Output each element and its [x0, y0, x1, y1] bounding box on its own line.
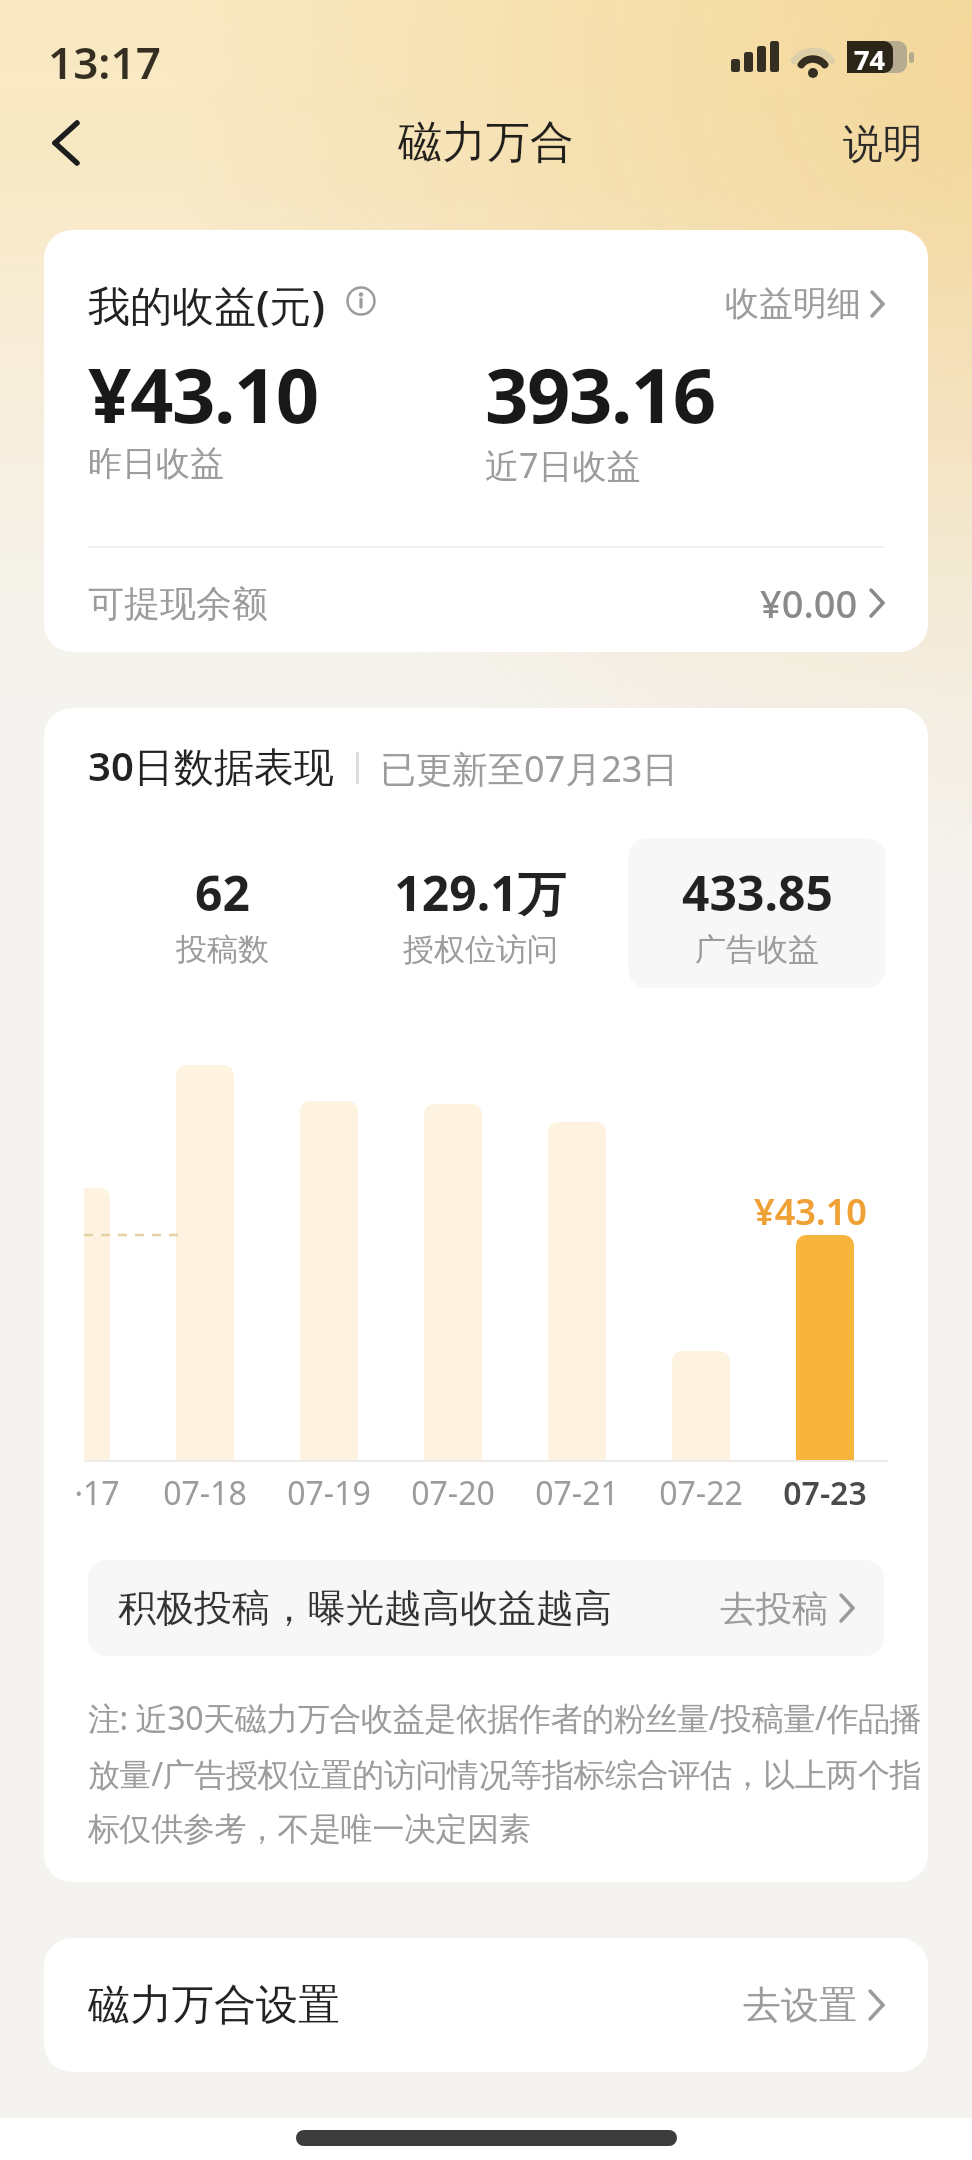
staticText: 磁力万合: [398, 115, 574, 170]
button[interactable]: 磁力万合设置: [88, 1938, 884, 2072]
staticText: ¥0.00: [760, 577, 858, 629]
staticText: 已更新至07月23日: [380, 744, 679, 793]
button[interactable]: 说明: [843, 118, 923, 168]
staticText: 07-23: [783, 1471, 867, 1515]
button[interactable]: 可提现余额: [88, 570, 884, 636]
staticText: 磁力万合设置: [88, 1979, 340, 2032]
staticText: 投稿数: [176, 930, 269, 969]
staticText: 129.1万: [394, 860, 566, 926]
staticText: 收益明细: [725, 282, 861, 325]
staticText: 去投稿: [720, 1586, 828, 1631]
staticText: ¥43.10: [88, 342, 318, 446]
staticText: 注: 近30天磁力万合收益是依据作者的粉丝量/投稿量/作品播 放量/广告授权位置…: [88, 1696, 928, 1850]
staticText: 30日数据表现: [88, 738, 334, 793]
staticText: ·17: [74, 1471, 120, 1515]
staticText: 积极投稿，曝光越高收益越高: [118, 1584, 612, 1632]
staticText: 可提现余额: [88, 581, 268, 626]
button[interactable]: [52, 120, 80, 166]
staticText: 去设置: [743, 1981, 857, 2029]
staticText: ¥43.10: [754, 1187, 867, 1236]
button[interactable]: 收益明细: [725, 282, 884, 325]
staticText: 授权位访问: [403, 930, 558, 969]
staticText: 07-20: [411, 1471, 495, 1515]
button[interactable]: 积极投稿，曝光越高收益越高: [118, 1560, 854, 1656]
staticText: 393.16: [485, 342, 715, 446]
staticText: 我的收益(元): [88, 276, 326, 333]
staticText: 13:17: [48, 32, 161, 92]
staticText: 昨日收益: [88, 442, 224, 485]
staticText: 说明: [843, 118, 923, 168]
staticText: 广告收益: [695, 930, 819, 969]
staticText: 近7日收益: [485, 442, 641, 488]
staticText: 07-21: [535, 1471, 619, 1515]
staticText: 62: [195, 860, 250, 925]
staticText: 07-19: [287, 1471, 371, 1515]
staticText: 07-18: [163, 1471, 247, 1515]
staticText: 433.85: [682, 860, 833, 925]
staticText: 07-22: [659, 1471, 743, 1515]
staticText: 74: [854, 41, 885, 78]
